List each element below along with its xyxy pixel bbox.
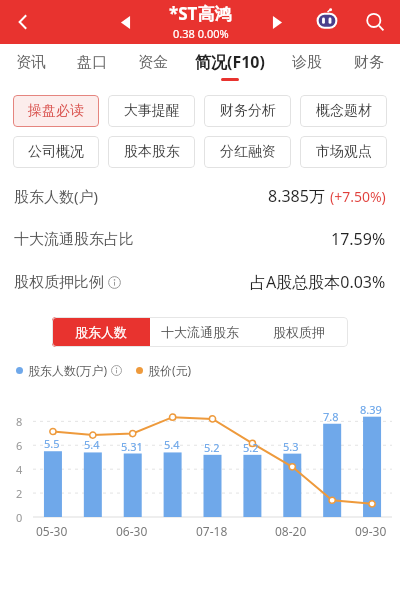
staticText: 操盘必读 (28, 102, 84, 120)
staticText: 09-30 (355, 523, 387, 539)
button[interactable]: 诊股 (276, 44, 338, 88)
staticText: 4 (16, 462, 23, 477)
staticText: 盘口 (77, 53, 107, 72)
staticText: 股价(元) (148, 362, 192, 378)
staticText: 占A股总股本0.03% (250, 271, 386, 293)
button[interactable]: Previous stock (110, 7, 140, 37)
button[interactable]: 股权质押 (249, 317, 348, 347)
staticText: 公司概况 (28, 143, 84, 161)
staticText: 资讯 (16, 53, 46, 72)
staticText: 简况(F10) (195, 51, 265, 73)
staticText: 17.59% (331, 228, 386, 250)
staticText: 股权质押比例 (14, 273, 104, 292)
staticText: (+7.50%) (330, 187, 386, 206)
staticText: 5.4 (164, 437, 180, 452)
staticText: 5.4 (84, 437, 100, 452)
button[interactable]: Next stock (262, 7, 292, 37)
button[interactable]: 股权质押比例 (14, 260, 386, 303)
staticText: 股东人数(户) (14, 186, 99, 206)
button[interactable]: 概念题材 (300, 95, 387, 127)
button[interactable]: 股东人数(户) (14, 174, 386, 217)
staticText: 股本股东 (124, 143, 180, 161)
staticText: 05-30 (36, 523, 68, 539)
staticText: 5.5 (44, 436, 60, 451)
button[interactable]: AI assistant (310, 5, 344, 39)
button[interactable]: 股本股东 (108, 136, 195, 168)
staticText: 财务分析 (220, 102, 276, 120)
button[interactable]: 简况(F10) (184, 44, 276, 88)
button[interactable]: 股东人数 (52, 317, 150, 347)
staticText: 7.8 (323, 409, 339, 424)
staticText: 06-30 (116, 523, 148, 539)
button[interactable]: 市场观点 (300, 136, 387, 168)
button[interactable]: Search (358, 5, 392, 39)
staticText: 诊股 (292, 53, 322, 72)
staticText: 股东人数 (75, 324, 127, 340)
staticText: 6 (16, 438, 23, 453)
staticText: 财务 (354, 53, 384, 72)
button[interactable]: 十大流通股东 (150, 317, 249, 347)
staticText: 2 (16, 486, 23, 501)
button[interactable]: 资讯 (0, 44, 61, 88)
button[interactable]: 大事提醒 (108, 95, 195, 127)
staticText: 5.2 (243, 440, 259, 455)
button[interactable]: 资金 (122, 44, 184, 88)
staticText: 07-18 (196, 523, 228, 539)
staticText: 大事提醒 (124, 102, 180, 120)
staticText: 8.385万 (268, 185, 325, 207)
button[interactable]: Back (6, 5, 40, 39)
button[interactable]: 财务 (338, 44, 400, 88)
staticText: 概念题材 (316, 102, 372, 120)
staticText: 5.31 (121, 439, 143, 454)
staticText: 0.38 0.00% (173, 26, 229, 41)
staticText: 股权质押 (273, 324, 325, 340)
staticText: 十大流通股东占比 (14, 230, 134, 249)
staticText: *ST高鸿 (169, 2, 232, 25)
staticText: 资金 (138, 53, 168, 72)
button[interactable]: 操盘必读 (13, 95, 99, 127)
staticText: 0 (16, 510, 23, 525)
staticText: 5.2 (204, 440, 220, 455)
button[interactable]: 十大流通股东占比 (14, 217, 386, 260)
staticText: 8.39 (360, 402, 382, 417)
staticText: 08-20 (275, 523, 307, 539)
staticText: 8 (16, 414, 23, 429)
button[interactable]: 分红融资 (204, 136, 291, 168)
staticText: 市场观点 (316, 143, 372, 161)
staticText: 分红融资 (220, 143, 276, 161)
button[interactable]: 盘口 (61, 44, 122, 88)
staticText: 十大流通股东 (161, 324, 239, 340)
staticText: 股东人数(万户) (28, 362, 108, 378)
button[interactable]: 财务分析 (204, 95, 291, 127)
staticText: 5.3 (283, 439, 299, 454)
button[interactable]: 公司概况 (13, 136, 99, 168)
